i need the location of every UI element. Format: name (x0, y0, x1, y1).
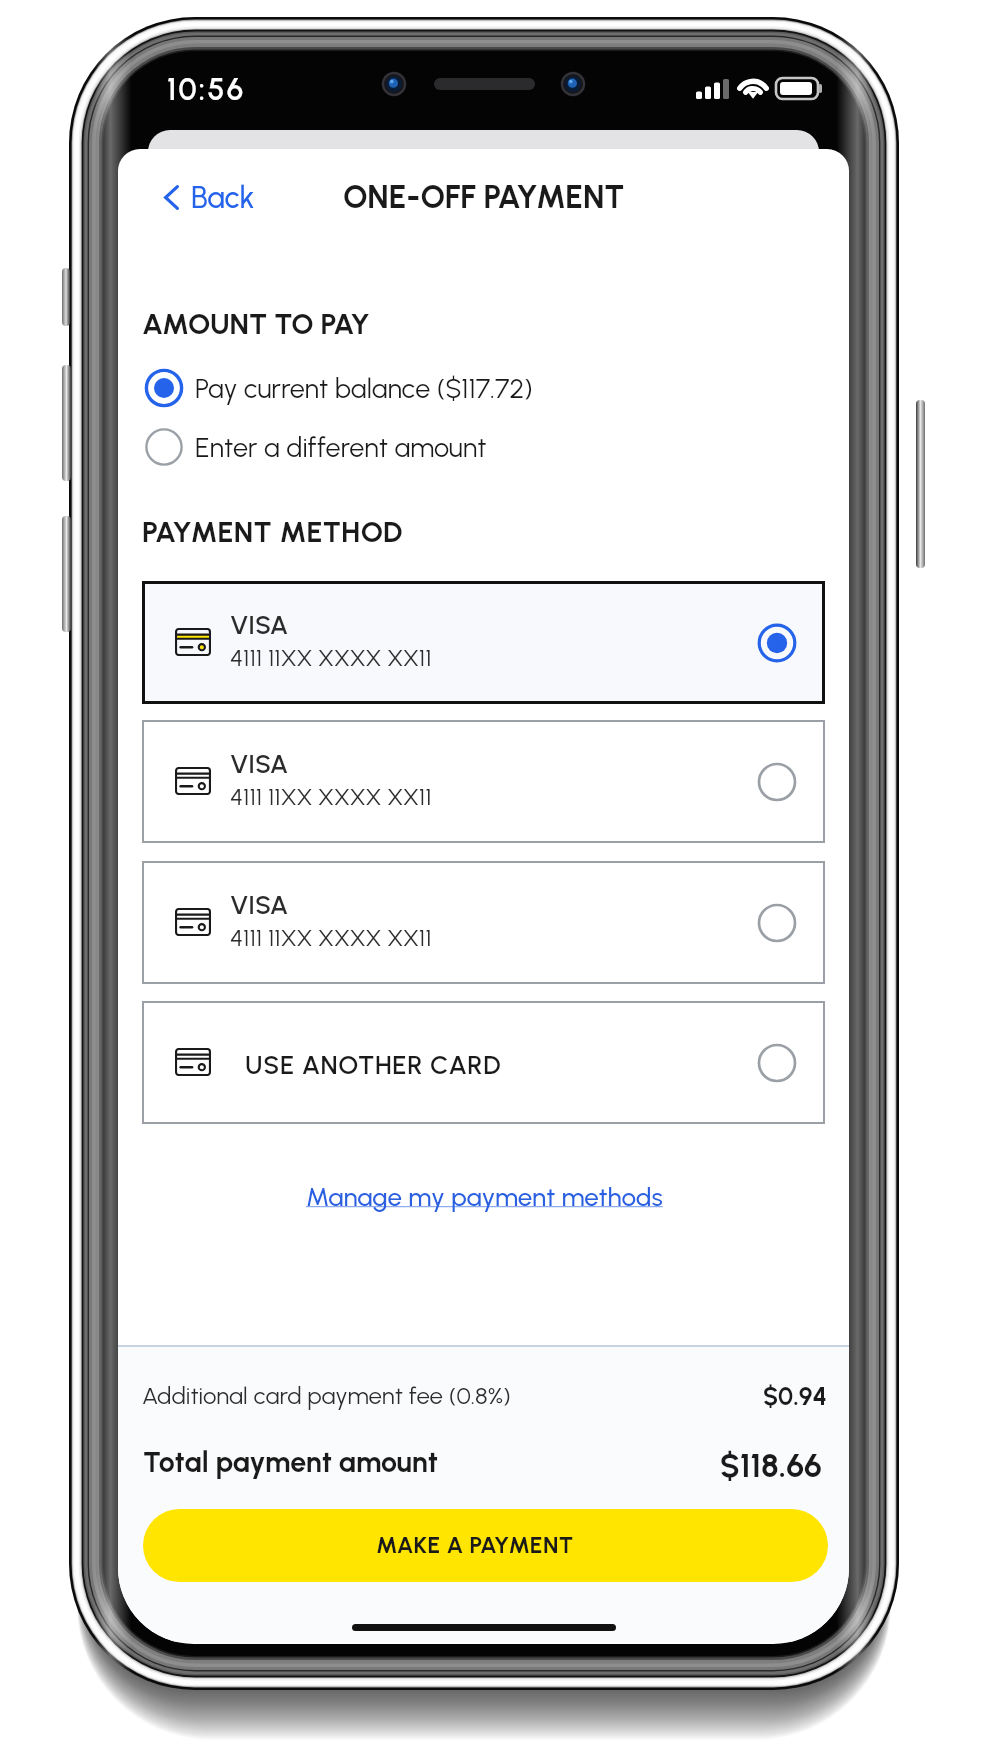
button[interactable]: MAKE A PAYMENT (143, 1509, 828, 1582)
staticText: Pay current balance ($117.72) (195, 372, 533, 404)
staticText: Back (191, 179, 255, 215)
staticText: $0.94 (763, 1381, 828, 1411)
staticText: VISA (230, 889, 289, 920)
staticText: MAKE A PAYMENT (376, 1531, 574, 1559)
button[interactable]: Manage my payment methods (296, 1169, 673, 1224)
button[interactable]: VISA (142, 861, 825, 984)
button[interactable]: USE ANOTHER CARD (142, 1001, 825, 1124)
staticText: VISA (230, 748, 289, 779)
staticText: Manage my payment methods (306, 1181, 663, 1212)
staticText: ONE-OFF PAYMENT (343, 178, 625, 216)
staticText: $118.66 (720, 1446, 822, 1485)
staticText: VISA (230, 609, 289, 640)
staticText: USE ANOTHER CARD (245, 1049, 502, 1080)
staticText: PAYMENT METHOD (142, 514, 403, 549)
button[interactable]: Enter a different amount (139, 419, 501, 475)
staticText: Total payment amount (143, 1445, 439, 1479)
staticText: 10:56 (167, 71, 246, 107)
button[interactable]: Pay current balance ($117.72) (139, 360, 547, 416)
button[interactable]: VISA (142, 720, 825, 843)
staticText: 4111 11XX XXXX XX11 (230, 923, 432, 952)
button[interactable]: Back (158, 169, 267, 225)
staticText: 4111 11XX XXXX XX11 (230, 782, 432, 811)
staticText: Additional card payment fee (0.8%) (142, 1381, 511, 1410)
staticText: 4111 11XX XXXX XX11 (230, 643, 432, 672)
button[interactable]: VISA (142, 581, 825, 704)
staticText: Enter a different amount (195, 431, 487, 463)
staticText: AMOUNT TO PAY (142, 306, 370, 341)
